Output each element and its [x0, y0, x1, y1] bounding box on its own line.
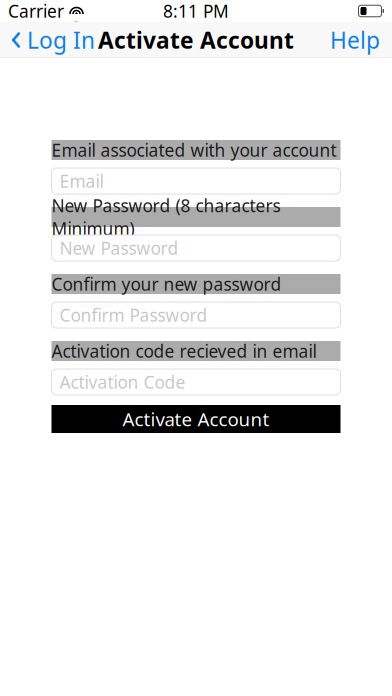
staticText: Confirm your new password	[51, 272, 281, 295]
staticText: Email associated with your account	[51, 138, 336, 161]
button[interactable]: Log In	[0, 22, 105, 58]
staticText: Log In	[27, 25, 95, 55]
staticText: Confirm Password	[59, 303, 207, 326]
staticText: Activation code recieved in email	[51, 339, 316, 362]
button[interactable]: New Password	[51, 235, 340, 261]
staticText: Activate Account	[122, 407, 269, 431]
staticText: Carrier	[8, 0, 64, 22]
button[interactable]: Email	[51, 168, 340, 194]
button[interactable]: Confirm Password	[51, 302, 340, 328]
staticText: Email	[59, 169, 103, 192]
button[interactable]: Activate Account	[51, 405, 340, 433]
staticText: Help	[330, 25, 380, 55]
staticText: New Password (8 characters Minimum)	[51, 194, 280, 240]
staticText: Activation Code	[59, 370, 185, 393]
staticText: 8:11 PM	[163, 0, 229, 22]
button[interactable]: Help	[318, 22, 392, 58]
staticText: New Password	[59, 236, 178, 259]
button[interactable]: Activation Code	[51, 369, 340, 395]
staticText: Activate Account	[98, 25, 294, 55]
